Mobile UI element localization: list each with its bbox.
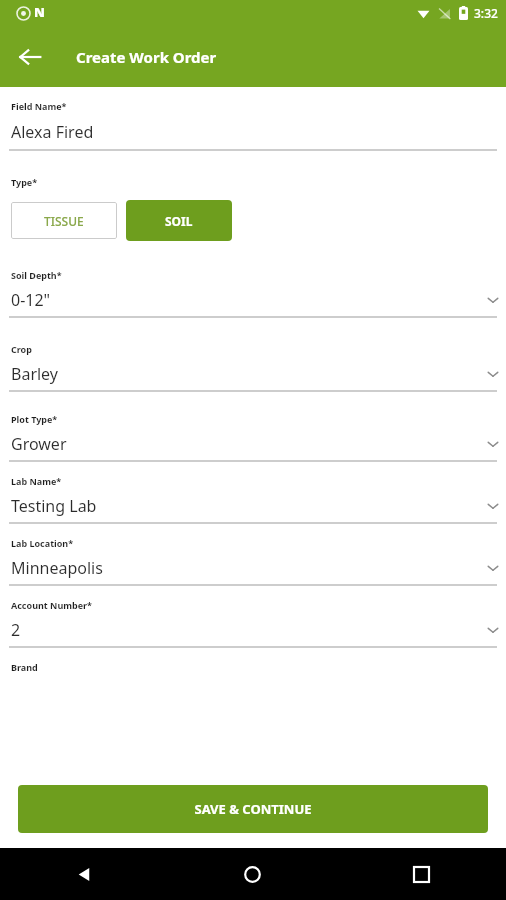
button[interactable]: SAVE & CONTINUE xyxy=(18,785,488,833)
button[interactable]: Minneapolis xyxy=(0,555,506,581)
staticText: 3:32 xyxy=(474,5,498,21)
button[interactable]: Testing Lab xyxy=(0,493,506,519)
staticText: Lab Name* xyxy=(11,475,62,487)
staticText: Plot Type* xyxy=(11,413,58,425)
staticText: Barley xyxy=(11,363,58,385)
button[interactable]: 0-12" xyxy=(0,287,506,313)
staticText: 0-12" xyxy=(11,289,51,311)
staticText: N xyxy=(34,3,45,21)
staticText: Brand xyxy=(11,661,38,673)
button[interactable]: TISSUE xyxy=(11,202,117,239)
button[interactable]: SOIL xyxy=(126,200,232,241)
staticText: Lab Location* xyxy=(11,537,74,549)
staticText: Soil Depth* xyxy=(11,269,62,281)
staticText: Grower xyxy=(11,433,67,455)
staticText: 2 xyxy=(11,619,21,641)
staticText: Type* xyxy=(11,176,38,188)
button[interactable]: Alexa Fired xyxy=(0,119,506,145)
button[interactable]: Recent apps xyxy=(337,848,506,900)
staticText: Alexa Fired xyxy=(11,121,94,143)
button[interactable]: Grower xyxy=(0,431,506,457)
staticText: Create Work Order xyxy=(76,47,217,67)
button[interactable]: 2 xyxy=(0,617,506,643)
button[interactable]: Barley xyxy=(0,361,506,387)
staticText: Field Name* xyxy=(11,100,67,112)
staticText: Crop xyxy=(11,343,32,355)
staticText: SOIL xyxy=(165,213,193,229)
button[interactable]: Back xyxy=(8,35,52,79)
button[interactable]: Home xyxy=(168,848,337,900)
staticText: SAVE & CONTINUE xyxy=(194,800,312,818)
staticText: Testing Lab xyxy=(11,495,97,517)
staticText: TISSUE xyxy=(44,213,84,229)
staticText: Minneapolis xyxy=(11,557,103,579)
button[interactable]: Back xyxy=(0,848,168,900)
staticText: Account Number* xyxy=(11,599,92,611)
